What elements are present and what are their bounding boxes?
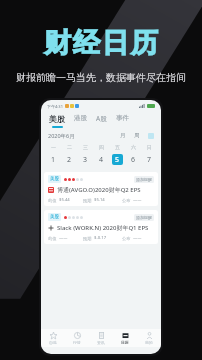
staticText: 日 [147,144,152,150]
staticText: 前值 [48,236,57,241]
staticText: 下午4:31 [47,104,63,109]
button[interactable]: 月 [120,132,126,139]
staticText: A股 [96,114,107,123]
staticText: 2 [67,155,72,165]
staticText: 港股 [74,114,87,122]
staticText: 四 [99,144,104,150]
staticText: 三 [83,144,88,150]
button[interactable]: 6 [125,151,141,168]
staticText: 自选 [49,340,57,345]
staticText: 4 [99,155,104,165]
button[interactable]: 美股 [44,172,158,206]
button[interactable]: 日历 [113,329,137,347]
button[interactable]: 周 [134,132,140,139]
staticText: 资讯 [97,340,105,345]
staticText: 日历 [121,340,129,345]
staticText: 6 [131,155,136,165]
staticText: $5.44 [59,197,70,203]
button[interactable]: 5 [109,151,125,168]
button[interactable]: 事件 [116,113,129,125]
staticText: 美股 [49,114,65,124]
staticText: —— [133,235,142,241]
button[interactable]: 4 [93,151,109,168]
staticText: 美股 [50,176,59,182]
staticText: 五 [115,144,120,150]
staticText: $5.14 [94,197,105,203]
staticText: —— [59,235,68,241]
staticText: 2020年6月 [48,132,75,140]
button[interactable]: 2 [61,151,77,168]
staticText: 公布 [122,198,131,203]
staticText: 3 [83,155,88,165]
staticText: 前值 [48,198,57,203]
button[interactable]: 美股 [44,210,158,244]
staticText: —— [133,197,142,203]
staticText: 二 [67,144,72,150]
staticText: Slack (WORK.N) 2020财年Q1 EPS [57,224,149,232]
staticText: 添加提醒 [136,215,152,220]
staticText: 美股 [50,214,59,220]
button[interactable]: Calendar view [148,133,154,139]
button[interactable]: 1 [45,151,61,168]
staticText: 1 [51,155,56,165]
staticText: 我的 [145,340,153,345]
button[interactable]: 3 [77,151,93,168]
staticText: 事件 [116,114,129,122]
button[interactable]: 行情 [65,329,89,347]
button[interactable]: 添加提醒 [134,176,154,183]
button[interactable]: 资讯 [89,329,113,347]
button[interactable]: 自选 [41,329,65,347]
button[interactable]: A股 [96,113,107,126]
staticText: $-0.17 [94,235,107,241]
button[interactable]: 我的 [137,329,161,347]
staticText: 博通(AVGO.O)2020财年Q2 EPS [57,186,141,194]
staticText: 预期 [83,198,92,203]
staticText: 财经日历 [43,26,159,60]
staticText: 六 [131,144,136,150]
staticText: 5 [115,155,120,165]
button[interactable]: 添加提醒 [134,214,154,221]
button[interactable]: 港股 [74,113,87,125]
button[interactable]: 7 [141,151,157,168]
staticText: 公布 [122,236,131,241]
staticText: 一 [51,144,56,150]
staticText: 7 [147,155,152,165]
button[interactable]: 美股 [49,113,65,129]
staticText: 财报前瞻一马当先，数据事件尽在指间 [16,71,186,84]
staticText: 行情 [73,340,81,345]
staticText: 预期 [83,236,92,241]
staticText: 添加提醒 [136,177,152,182]
